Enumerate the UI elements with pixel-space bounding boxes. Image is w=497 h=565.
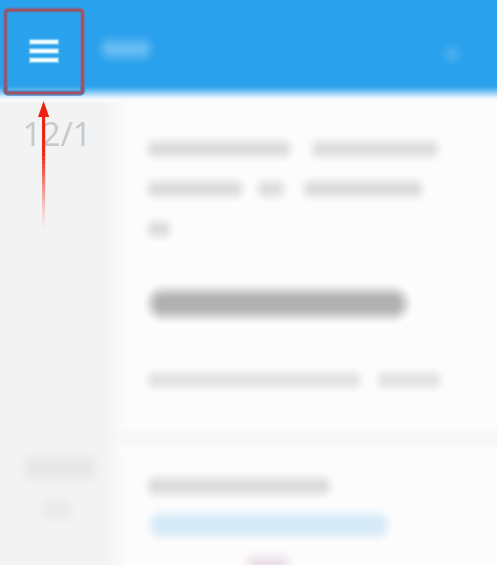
staticText: 12/1 [22, 111, 91, 155]
button[interactable]: Search [425, 27, 479, 81]
button[interactable]: Menu [5, 9, 83, 93]
